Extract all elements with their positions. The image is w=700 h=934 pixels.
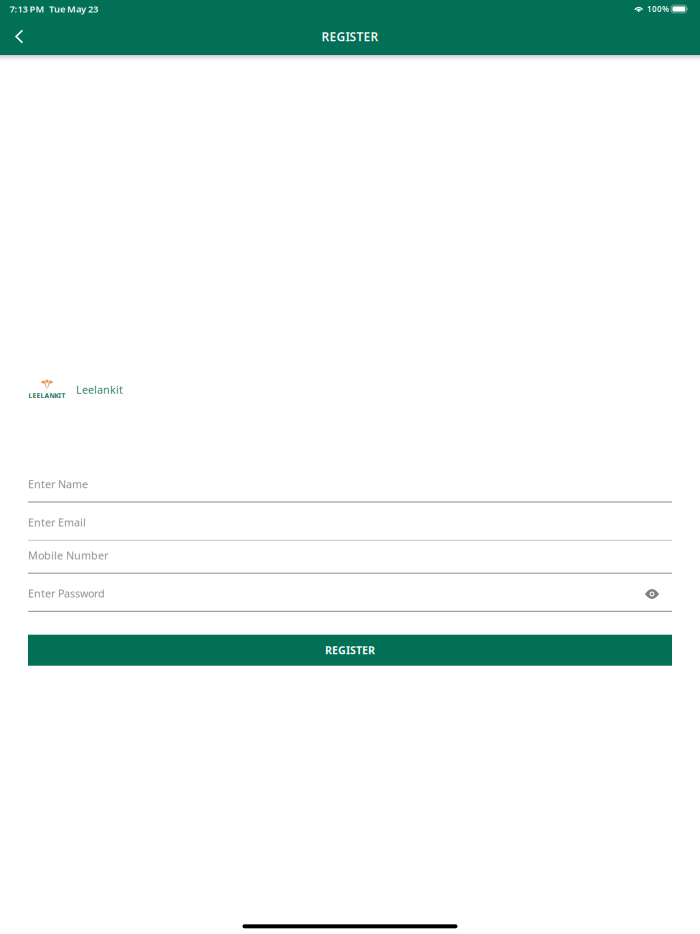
staticText: REGISTER bbox=[325, 643, 375, 657]
button[interactable]: Enter Email bbox=[28, 519, 86, 529]
button[interactable]: Enter Name bbox=[28, 480, 88, 491]
staticText: REGISTER bbox=[321, 28, 378, 44]
button[interactable]: REGISTER bbox=[28, 635, 672, 666]
button[interactable]: Mobile Number bbox=[28, 552, 108, 562]
button[interactable]: Enter Password bbox=[28, 590, 105, 600]
staticText: Enter Name bbox=[28, 477, 88, 491]
staticText: LEELANKIT bbox=[28, 391, 65, 400]
button[interactable]: Back bbox=[0, 18, 37, 54]
button[interactable]: Show password bbox=[645, 590, 672, 599]
staticText: 7:13 PM bbox=[9, 3, 44, 15]
staticText: Mobile Number bbox=[28, 548, 108, 562]
staticText: 100% bbox=[647, 4, 669, 14]
staticText: Enter Password bbox=[28, 586, 105, 600]
staticText: Enter Email bbox=[28, 515, 86, 529]
staticText: Leelankit bbox=[76, 382, 123, 397]
staticText: Tue May 23 bbox=[49, 3, 98, 15]
